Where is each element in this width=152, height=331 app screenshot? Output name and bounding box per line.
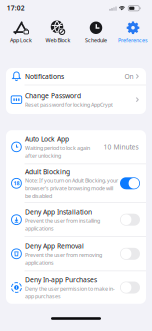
staticText: Notifications [25,72,64,81]
staticText: Reset password for locking AppCrypt [25,101,113,108]
staticText: On [125,72,134,81]
staticText: Web Block [45,37,70,44]
button[interactable]: Deny App Installation [120,214,140,226]
staticText: Deny App Installation [25,207,92,216]
staticText: Waiting period to lock again after unloc… [25,144,90,159]
button[interactable]: Notifications [6,68,146,85]
staticText: Adult Blocking [25,167,70,176]
staticText: Deny App Removal [25,241,84,250]
staticText: App Lock [10,37,32,44]
staticText: Deny the user permission to make in- app… [25,285,115,300]
staticText: Prevent the user from installing applica… [25,217,100,232]
staticText: 17:02 [7,4,25,12]
staticText: Prevent the user from removing applicati… [25,251,102,266]
staticText: 18 [13,180,19,187]
staticText: 10 Minutes [103,142,138,151]
staticText: Note: If you turn on Adult Blocking, you… [25,177,118,199]
button[interactable]: App Lock [2,20,39,44]
staticText: Preferences [118,37,148,44]
button[interactable]: Schedule [77,20,114,44]
button[interactable]: Auto Lock App [6,130,146,164]
button[interactable]: Preferences [114,20,151,44]
button[interactable]: Change Password [6,85,146,114]
button[interactable]: Deny In-app Purchases [120,281,140,293]
button[interactable]: Web Block [39,20,76,44]
staticText: Deny In-app Purchases [25,275,97,284]
staticText: Schedule [85,37,107,44]
button[interactable]: Deny App Removal [120,248,140,260]
staticText: Change Password [25,91,81,100]
button[interactable]: Adult Blocking [120,177,140,189]
staticText: Auto Lock App [25,135,69,143]
